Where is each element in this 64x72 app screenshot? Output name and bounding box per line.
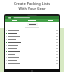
- button[interactable]: [5, 50, 59, 53]
- button[interactable]: [5, 32, 59, 35]
- button[interactable]: [5, 41, 59, 44]
- button[interactable]: [5, 44, 59, 47]
- button[interactable]: Tab 3: [41, 19, 59, 22]
- button[interactable]: [5, 59, 59, 62]
- button[interactable]: [5, 35, 59, 38]
- button[interactable]: [5, 62, 59, 65]
- button[interactable]: [5, 53, 59, 56]
- staticText: With Your Gear: [3, 6, 61, 11]
- button[interactable]: Select gear: [27, 23, 38, 26]
- button[interactable]: [5, 29, 59, 32]
- button[interactable]: [5, 56, 59, 59]
- button[interactable]: [5, 47, 59, 50]
- button[interactable]: [5, 38, 59, 41]
- staticText: Create Packing Lists: [3, 1, 61, 6]
- button[interactable]: Tab 2: [23, 19, 41, 22]
- button[interactable]: Tab 1: [5, 19, 23, 22]
